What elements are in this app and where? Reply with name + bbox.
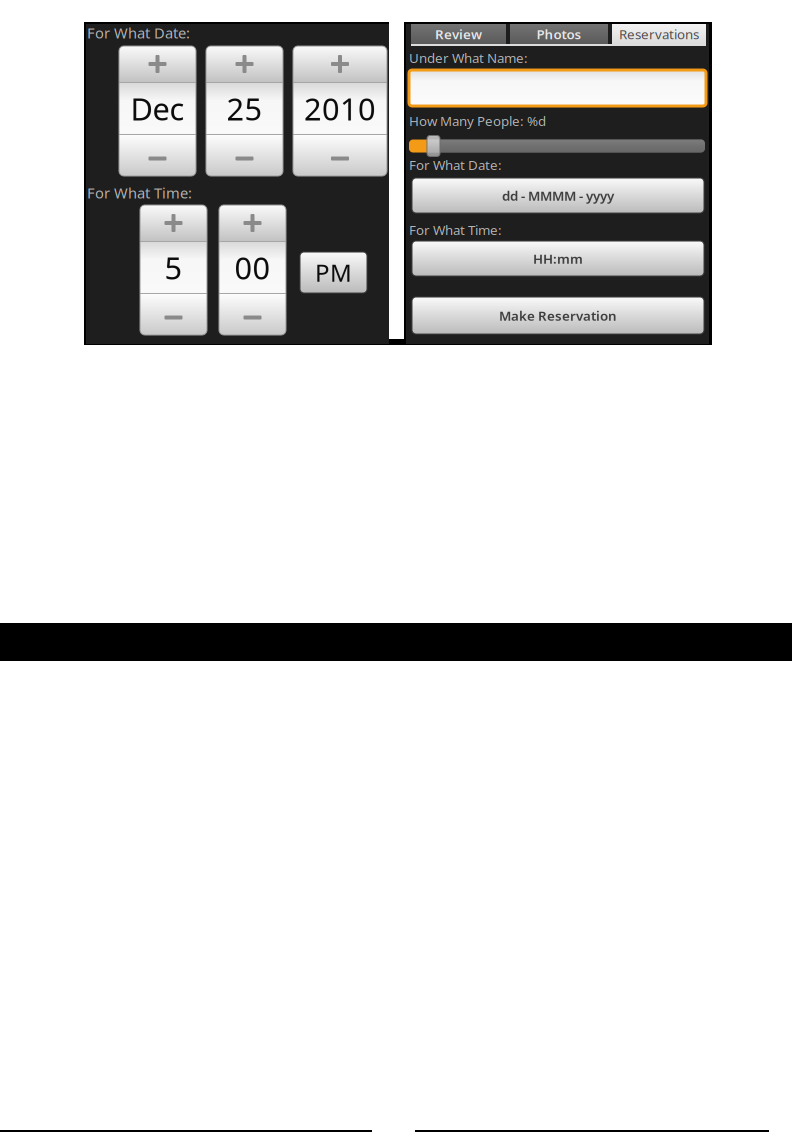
button[interactable]: Increase Dec bbox=[119, 46, 196, 82]
button[interactable]: Decrease 5 bbox=[140, 294, 207, 335]
staticText: dd - MMMM - yyyy bbox=[502, 187, 614, 204]
button[interactable]: Decrease 2010 bbox=[293, 135, 387, 176]
staticText: Under What Name: bbox=[409, 49, 528, 67]
button[interactable]: HH:mm bbox=[412, 241, 704, 276]
button[interactable]: Decrease 00 bbox=[219, 294, 286, 335]
staticText: 25 bbox=[226, 88, 262, 129]
staticText: Make Reservation bbox=[499, 307, 617, 324]
button[interactable]: PM bbox=[300, 252, 367, 293]
staticText: 00 bbox=[234, 247, 270, 288]
button[interactable]: Make Reservation bbox=[412, 297, 704, 334]
staticText: Dec bbox=[130, 88, 184, 129]
button[interactable]: dd - MMMM - yyyy bbox=[412, 178, 704, 213]
staticText: Photos bbox=[536, 25, 581, 43]
staticText: How Many People: %d bbox=[409, 112, 546, 130]
staticText: 2010 bbox=[304, 88, 376, 129]
button[interactable]: Review bbox=[411, 24, 506, 44]
button[interactable]: Increase 00 bbox=[219, 205, 286, 241]
staticText: PM bbox=[315, 257, 352, 288]
button[interactable]: Decrease 25 bbox=[206, 135, 283, 176]
button[interactable]: Increase 2010 bbox=[293, 46, 387, 82]
button[interactable]: Increase 25 bbox=[206, 46, 283, 82]
staticText: 5 bbox=[164, 247, 182, 288]
staticText: Reservations bbox=[619, 25, 699, 43]
staticText: For What Date: bbox=[87, 23, 190, 42]
button[interactable]: Decrease Dec bbox=[119, 135, 196, 176]
button[interactable]: Reservations bbox=[612, 24, 706, 44]
staticText: Review bbox=[435, 25, 482, 43]
staticText: For What Date: bbox=[409, 156, 502, 174]
staticText: For What Time: bbox=[409, 221, 502, 239]
staticText: For What Time: bbox=[87, 183, 192, 202]
button[interactable]: Photos bbox=[510, 24, 608, 44]
button[interactable]: Increase 5 bbox=[140, 205, 207, 241]
staticText: HH:mm bbox=[533, 250, 583, 267]
